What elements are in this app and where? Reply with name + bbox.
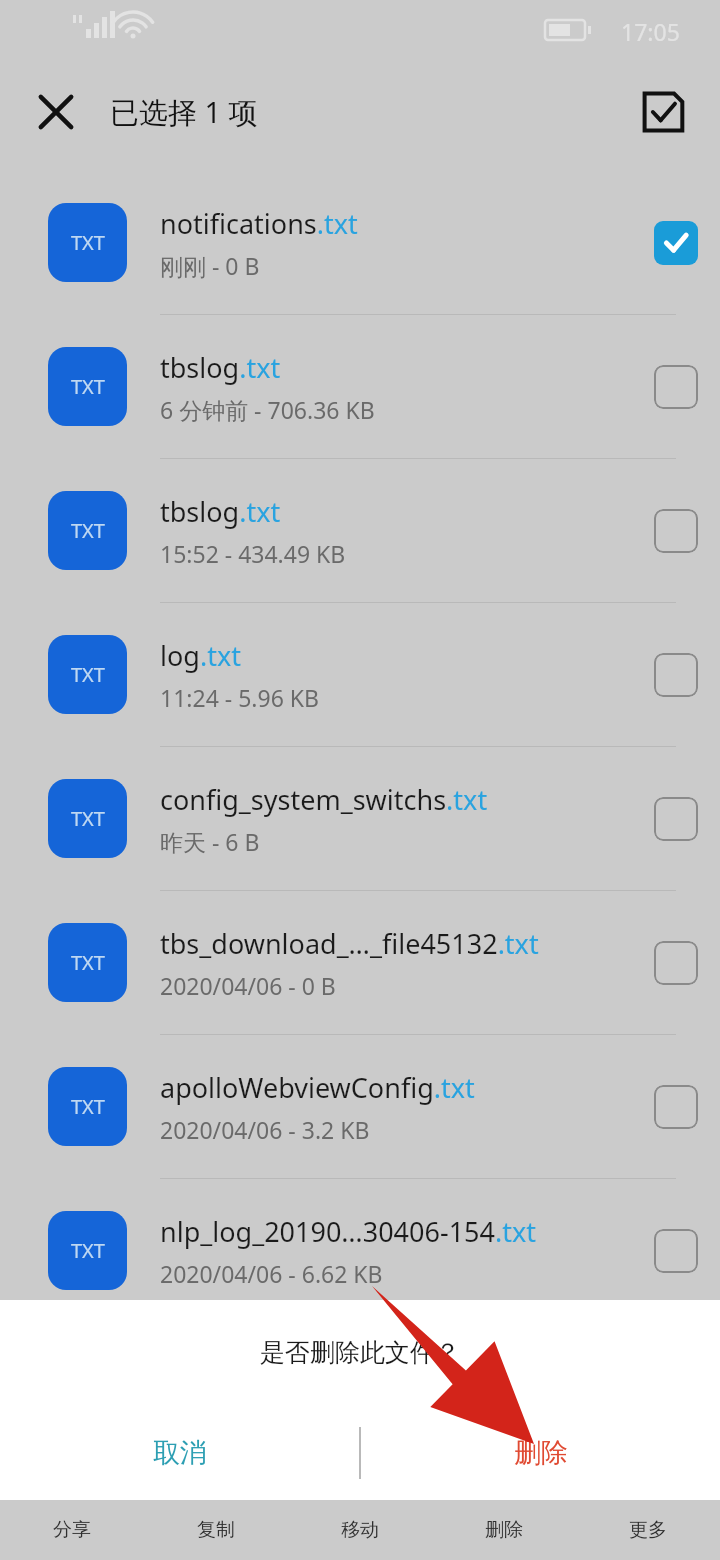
staticText: 2020/04/06 - 0 B <box>160 970 336 1001</box>
button[interactable]: Select file <box>632 891 720 1034</box>
staticText: 取消 <box>153 1436 207 1470</box>
staticText: config_system_switchs.txt <box>160 781 488 818</box>
staticText: 删除 <box>485 1518 523 1542</box>
button[interactable]: TXT <box>0 315 720 458</box>
button[interactable]: TXT <box>0 171 720 314</box>
staticText: 2020/04/06 - 3.2 KB <box>160 1114 370 1145</box>
staticText: 移动 <box>341 1518 379 1542</box>
staticText: 是否删除此文件？ <box>260 1337 460 1368</box>
button[interactable]: Select file <box>632 171 720 314</box>
staticText: nlp_log_20190…30406-154.txt <box>160 1213 536 1250</box>
button[interactable]: TXT <box>0 747 720 890</box>
staticText: TXT <box>71 949 105 976</box>
button[interactable]: TXT <box>0 1035 720 1178</box>
staticText: TXT <box>71 805 105 832</box>
staticText: 复制 <box>197 1518 235 1542</box>
button[interactable]: TXT <box>0 1179 720 1322</box>
button[interactable]: Select file <box>632 603 720 746</box>
button[interactable]: 复制 <box>144 1500 288 1560</box>
staticText: apolloWebviewConfig.txt <box>160 1069 475 1106</box>
button[interactable]: Select file <box>632 1179 720 1322</box>
staticText: TXT <box>71 661 105 688</box>
staticText: 昨天 - 6 B <box>160 826 260 857</box>
staticText: 17:05 <box>621 16 680 47</box>
staticText: log.txt <box>160 637 241 674</box>
staticText: 刚刚 - 0 B <box>160 250 260 281</box>
button[interactable]: 移动 <box>288 1500 432 1560</box>
staticText: 15:52 - 434.49 KB <box>160 538 346 569</box>
button[interactable]: 更多 <box>576 1500 720 1560</box>
staticText: tbslog.txt <box>160 493 281 530</box>
staticText: 已选择 1 项 <box>110 92 258 132</box>
button[interactable]: Select file <box>632 747 720 890</box>
staticText: 2020/04/06 - 6.62 KB <box>160 1258 383 1289</box>
button[interactable]: Select file <box>632 1035 720 1178</box>
staticText: 11:24 - 5.96 KB <box>160 682 319 713</box>
staticText: TXT <box>71 229 105 256</box>
staticText: 分享 <box>53 1518 91 1542</box>
button[interactable]: TXT <box>0 891 720 1034</box>
button[interactable]: Select file <box>632 315 720 458</box>
staticText: tbs_download_…_file45132.txt <box>160 925 539 962</box>
button[interactable]: Select all <box>628 77 698 147</box>
staticText: notifications.txt <box>160 205 358 242</box>
staticText: 6 分钟前 - 706.36 KB <box>160 394 375 425</box>
staticText: tbslog.txt <box>160 349 281 386</box>
button[interactable]: Close <box>24 80 88 144</box>
button[interactable]: 分享 <box>0 1500 144 1560</box>
button[interactable]: 删除 <box>361 1405 720 1500</box>
staticText: TXT <box>71 373 105 400</box>
staticText: 删除 <box>514 1436 568 1470</box>
button[interactable]: 取消 <box>0 1405 359 1500</box>
button[interactable]: 删除 <box>432 1500 576 1560</box>
button[interactable]: TXT <box>0 459 720 602</box>
staticText: TXT <box>71 1237 105 1264</box>
button[interactable]: Select file <box>632 459 720 602</box>
staticText: TXT <box>71 1093 105 1120</box>
staticText: TXT <box>71 517 105 544</box>
button[interactable]: TXT <box>0 603 720 746</box>
staticText: 更多 <box>629 1518 667 1542</box>
